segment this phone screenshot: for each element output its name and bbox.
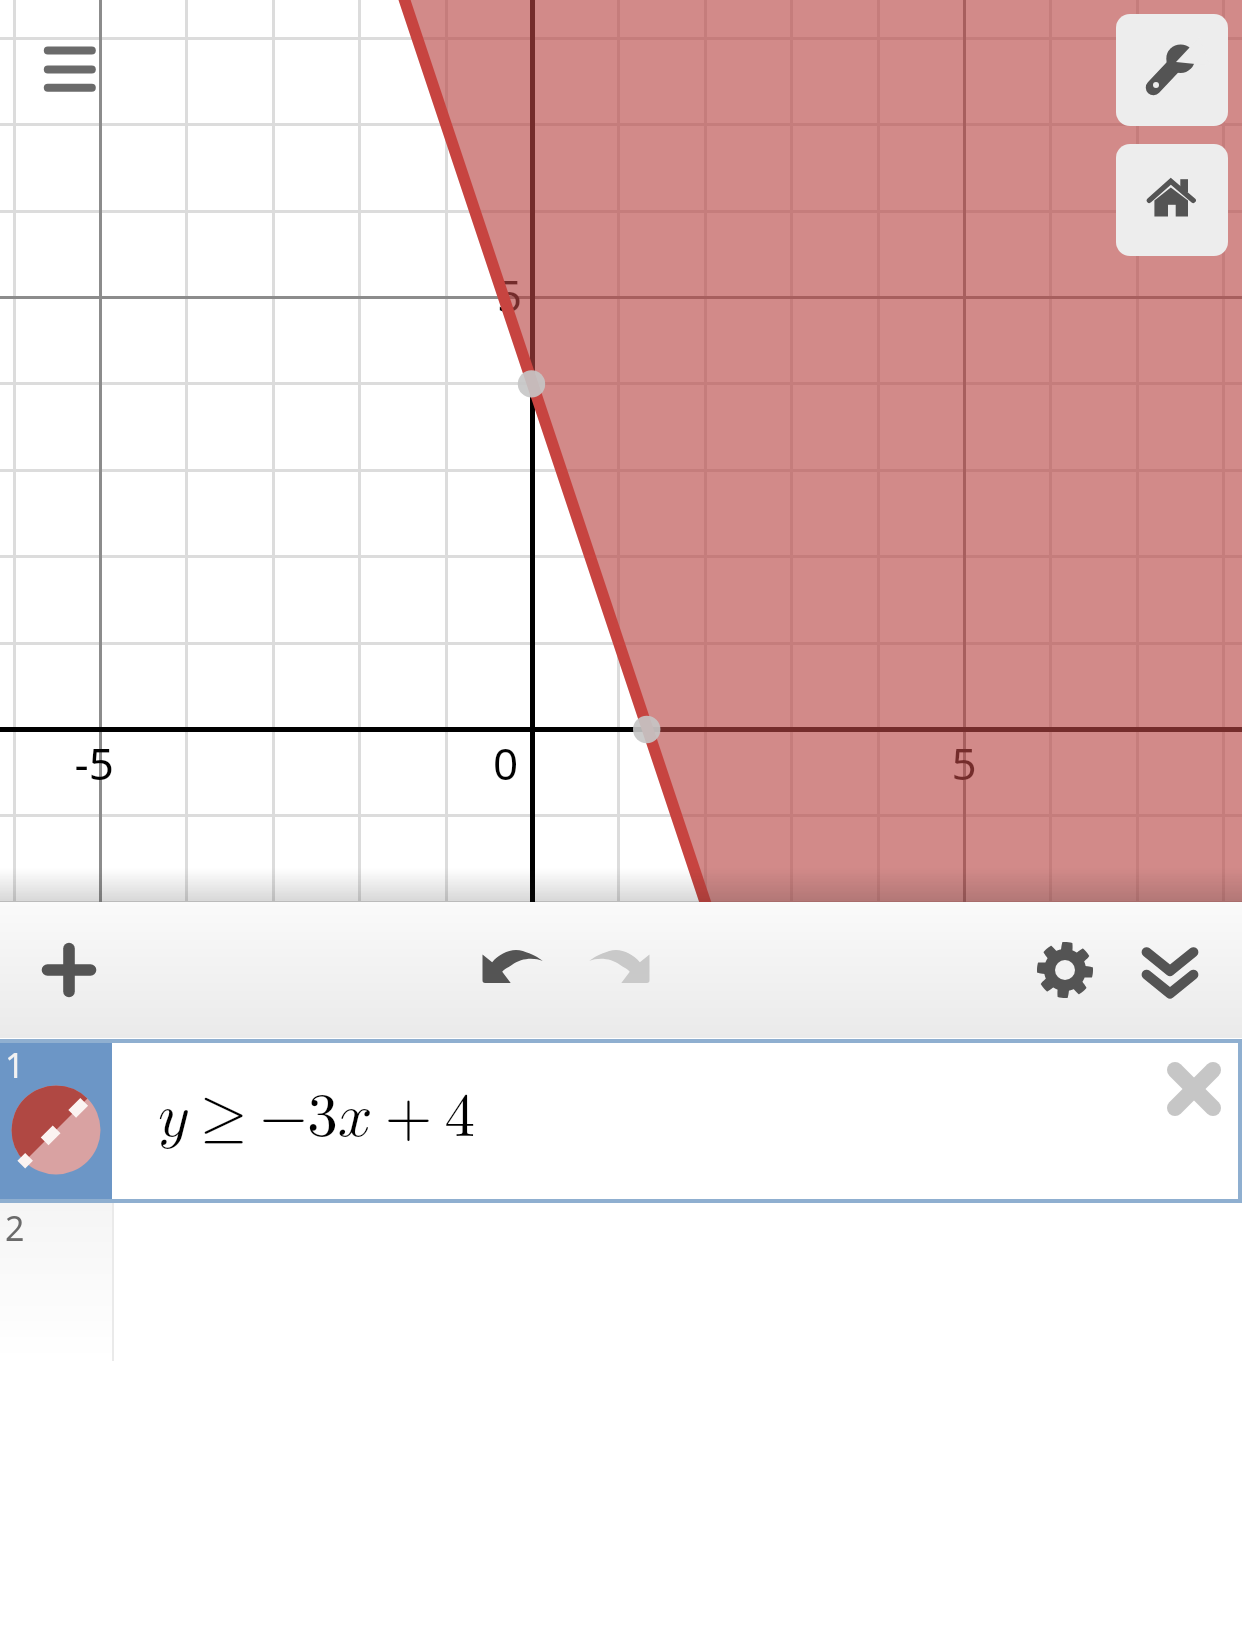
button[interactable]: Add expression (19, 920, 119, 1020)
button[interactable]: Graph settings (1015, 920, 1115, 1020)
staticText: 2 (5, 1205, 25, 1251)
staticText: 𝑦 ≥ −3𝑥 + 4 (158, 1087, 475, 1148)
button[interactable]: 2 (0, 1203, 112, 1361)
button[interactable]: Redo (589, 949, 650, 983)
button[interactable]: Delete expression (1144, 1039, 1242, 1139)
staticText: 1 (5, 1042, 25, 1088)
button[interactable]: Menu (20, 20, 116, 112)
button[interactable]: Home (1116, 144, 1228, 256)
button[interactable]: Graph tools (1116, 14, 1228, 126)
button[interactable]: Collapse keypad (1120, 921, 1220, 1021)
button[interactable]: 1 (0, 1043, 1242, 1199)
button[interactable]: Undo (482, 949, 543, 983)
